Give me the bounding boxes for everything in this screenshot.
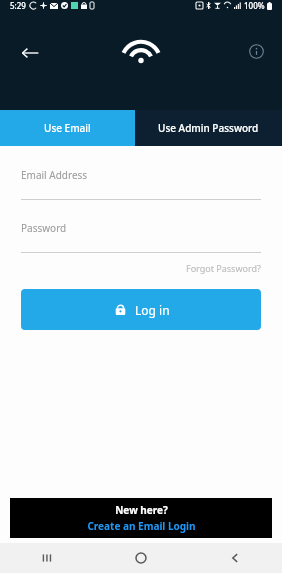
button[interactable]: Forgot Password? [186,262,261,274]
button[interactable]: Use Email [0,110,135,146]
staticText: Email Address [21,168,88,182]
button[interactable]: Use Admin Password [135,110,282,146]
staticText: 100% [244,0,265,11]
staticText: Password [21,221,67,235]
button[interactable]: Log in [21,289,261,330]
button[interactable]: Back [10,33,50,73]
button[interactable]: Back [188,543,282,573]
staticText: Log in [135,302,170,318]
button[interactable]: Recent apps [0,543,94,573]
button[interactable]: Password [21,221,261,253]
staticText: 5:29 [10,0,26,11]
staticText: Forgot Password? [186,262,261,274]
button[interactable]: Info [238,33,274,69]
staticText: Create an Email Login [87,519,196,533]
button[interactable]: Home [94,543,188,573]
staticText: Use Admin Password [158,121,259,135]
button[interactable]: New here? [10,498,272,538]
staticText: New here? [115,503,168,517]
staticText: Use Email [44,121,91,135]
button[interactable]: Email Address [21,168,261,200]
